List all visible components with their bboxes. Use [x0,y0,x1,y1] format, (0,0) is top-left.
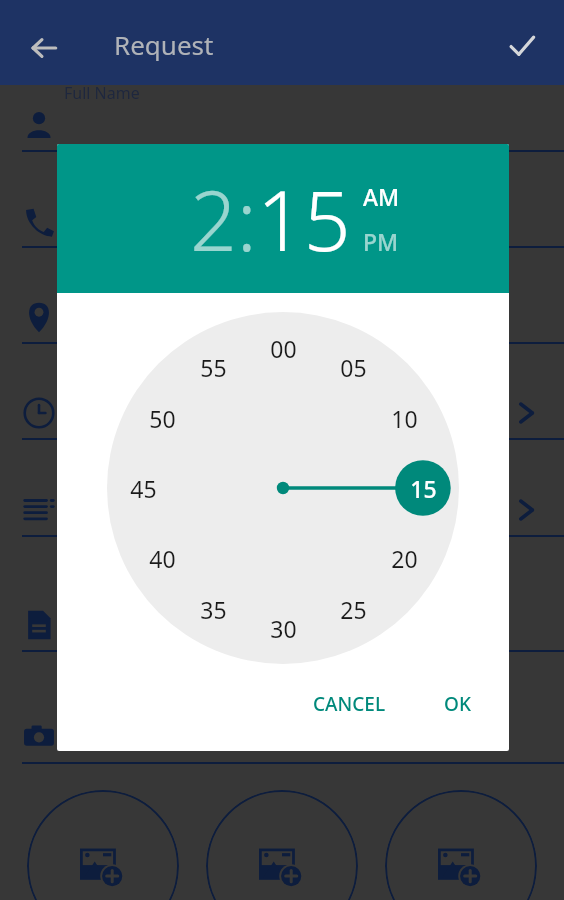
staticText: 05 [340,352,367,383]
staticText: 10 [391,403,418,434]
staticText: 00 [270,333,297,364]
staticText: 55 [200,352,227,383]
button[interactable]: 25 [331,587,375,631]
button[interactable]: OK [428,683,487,725]
button[interactable]: Confirm [498,22,546,70]
staticText: 35 [200,594,227,625]
button[interactable]: 35 [191,587,235,631]
button[interactable]: 55 [191,345,235,389]
button[interactable]: 2: [190,163,257,275]
button[interactable]: 10 [382,396,426,440]
button[interactable]: Add photo [27,790,179,900]
staticText: 45 [130,473,157,504]
staticText: OK [444,691,471,717]
button[interactable]: Add photo [385,790,537,900]
staticText: 20 [391,543,418,574]
button[interactable]: Back [18,22,70,74]
button[interactable]: AM [363,181,400,212]
staticText: 30 [270,613,297,644]
staticText: 25 [340,594,367,625]
button[interactable]: 05 [331,345,375,389]
button[interactable]: 40 [140,536,184,580]
staticText: 50 [149,403,176,434]
staticText: 15 [410,473,437,504]
button[interactable]: PM [363,226,399,257]
staticText: Full Name [64,82,140,104]
button[interactable]: 50 [140,396,184,440]
button[interactable]: 15 [401,466,445,510]
button[interactable]: 20 [382,536,426,580]
button[interactable]: 45 [121,466,165,510]
staticText: Request [114,27,214,62]
button[interactable]: 30 [261,606,305,650]
staticText: CANCEL [313,691,386,717]
button[interactable]: 00 [261,326,305,370]
button[interactable]: Add photo [206,790,358,900]
staticText: 40 [149,543,176,574]
button[interactable]: 15 [257,163,351,275]
button[interactable]: CANCEL [297,683,402,725]
